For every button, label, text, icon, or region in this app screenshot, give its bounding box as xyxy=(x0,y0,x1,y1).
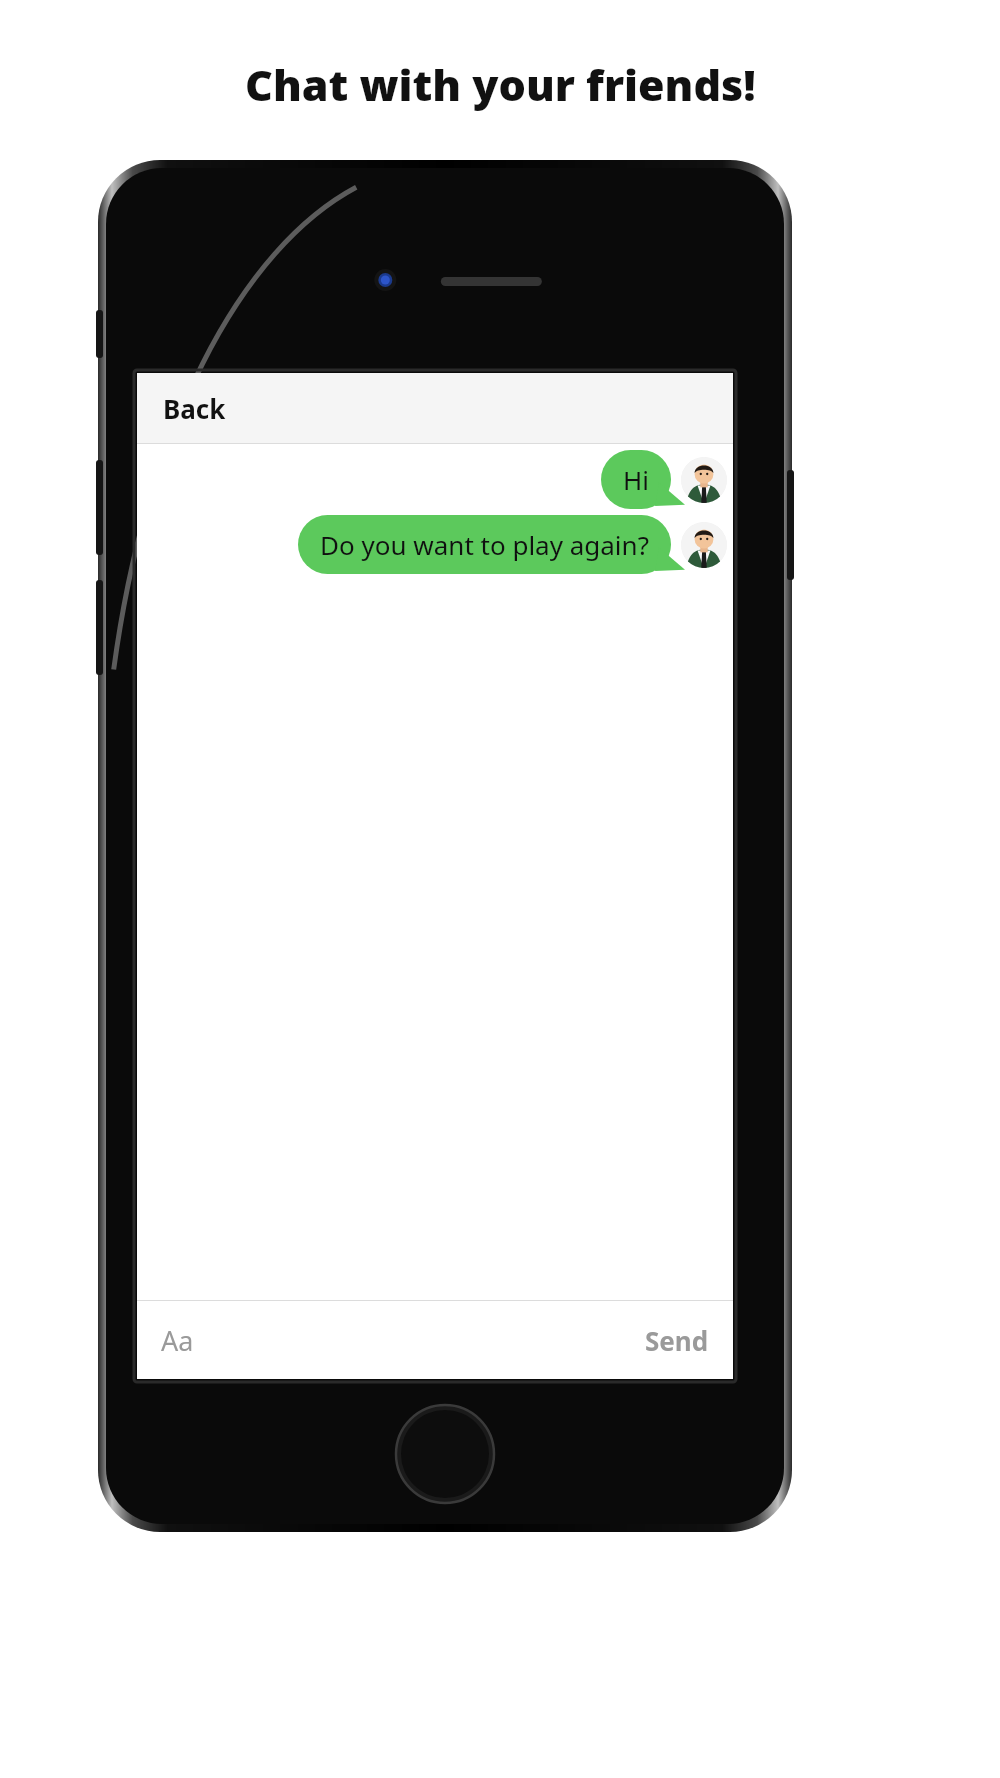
staticText: Back xyxy=(163,391,226,426)
button[interactable]: Hi xyxy=(137,450,727,509)
staticText: Chat with your friends! xyxy=(245,55,756,114)
staticText: Aa xyxy=(161,1322,194,1359)
staticText: Send xyxy=(645,1323,709,1358)
staticText: Hi xyxy=(623,462,649,497)
button[interactable]: Send xyxy=(645,1301,733,1379)
button[interactable]: Aa xyxy=(137,1301,645,1379)
button[interactable]: Back xyxy=(137,373,733,443)
button[interactable]: Contact avatar xyxy=(681,522,727,568)
button[interactable]: Contact avatar xyxy=(681,457,727,503)
staticText: Do you want to play again? xyxy=(320,527,649,562)
button[interactable]: Do you want to play again? xyxy=(137,515,727,574)
